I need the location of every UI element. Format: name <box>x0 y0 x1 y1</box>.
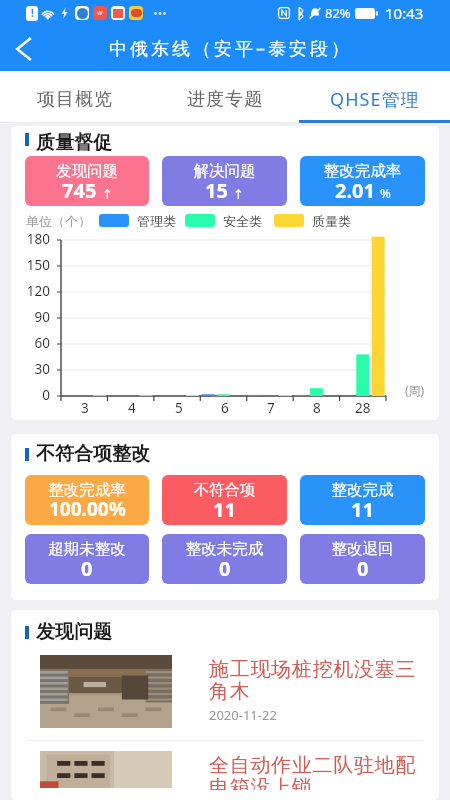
staticText: 0 <box>219 555 231 582</box>
staticText: 整改完成率 <box>300 161 425 181</box>
staticText: 0 <box>81 555 93 582</box>
staticText: 10:43 <box>385 3 424 23</box>
staticText: 2020-11-22 <box>209 706 277 724</box>
staticText: 管理类 <box>137 213 176 227</box>
staticText: ! <box>31 6 34 20</box>
staticText: 超期未整改 <box>25 539 149 559</box>
staticText: 11 <box>351 496 374 523</box>
staticText: 不符合项 <box>162 480 287 500</box>
staticText: 745 <box>62 177 97 204</box>
button[interactable]: 整改退回 <box>300 534 425 584</box>
staticText: 质量类 <box>312 213 351 227</box>
button[interactable]: 进度专题 <box>150 71 300 123</box>
staticText: 安全类 <box>223 213 262 227</box>
staticText: 施工现场桩挖机没塞三角木 <box>209 657 425 704</box>
staticText: 5 <box>175 399 183 417</box>
staticText: 整改完成率 <box>25 480 149 500</box>
staticText: 3 <box>81 399 89 417</box>
staticText: 发现问题 <box>25 161 149 181</box>
staticText: 发现问题 <box>36 620 112 644</box>
button[interactable]: 施工现场桩挖机没塞三角木 <box>40 655 425 728</box>
staticText: 8 <box>313 399 321 417</box>
staticText: 整改未完成 <box>162 539 287 559</box>
staticText: 0 <box>357 555 369 582</box>
staticText: 2.01 <box>335 177 375 204</box>
staticText: 120 <box>26 282 50 300</box>
staticText: QHSE管理 <box>330 87 420 112</box>
staticText: 28 <box>355 399 371 417</box>
staticText: 100.00% <box>49 496 126 522</box>
staticText: 全自动作业二队驻地配电箱没上锁 <box>209 753 425 790</box>
button[interactable]: 超期未整改 <box>25 534 149 584</box>
staticText: 4 <box>128 399 136 417</box>
staticText: w <box>97 8 103 18</box>
staticText: 整改完成 <box>300 480 425 500</box>
staticText: 质量督促 <box>36 131 112 151</box>
button[interactable]: QHSE管理 <box>300 71 450 123</box>
staticText: 整改退回 <box>300 539 425 559</box>
button[interactable]: 解决问题 <box>162 156 287 206</box>
staticText: % <box>380 184 391 202</box>
staticText: 82% <box>325 4 351 22</box>
staticText: 6 <box>221 399 229 417</box>
button[interactable]: 整改完成 <box>300 475 425 525</box>
staticText: 项目概览 <box>37 88 114 111</box>
button[interactable]: 不符合项 <box>162 475 287 525</box>
staticText: 7 <box>267 399 275 417</box>
staticText: 11 <box>213 496 236 523</box>
staticText: (周) <box>405 382 425 398</box>
button[interactable]: 全自动作业二队驻地配电箱没上锁 <box>40 751 425 788</box>
staticText: 解决问题 <box>162 161 287 181</box>
button[interactable]: Back <box>0 26 46 71</box>
button[interactable]: 整改完成率 <box>25 475 149 525</box>
staticText: 0 <box>42 386 50 404</box>
staticText: 单位（个） <box>26 213 91 227</box>
button[interactable]: 发现问题 <box>25 156 149 206</box>
staticText: 90 <box>34 308 50 326</box>
staticText: ↑ <box>102 187 113 202</box>
staticText: 60 <box>34 334 50 352</box>
staticText: 15 <box>205 177 228 204</box>
staticText: 30 <box>34 360 50 378</box>
staticText: ↑ <box>233 187 244 202</box>
staticText: 中俄东线（安平–泰安段） <box>109 36 352 61</box>
button[interactable]: 项目概览 <box>0 71 150 123</box>
staticText: 进度专题 <box>187 88 264 111</box>
button[interactable]: 整改未完成 <box>162 534 287 584</box>
button[interactable]: 整改完成率 <box>300 156 425 206</box>
staticText: 150 <box>26 256 50 274</box>
staticText: 不符合项整改 <box>36 442 150 466</box>
staticText: 180 <box>26 230 50 248</box>
